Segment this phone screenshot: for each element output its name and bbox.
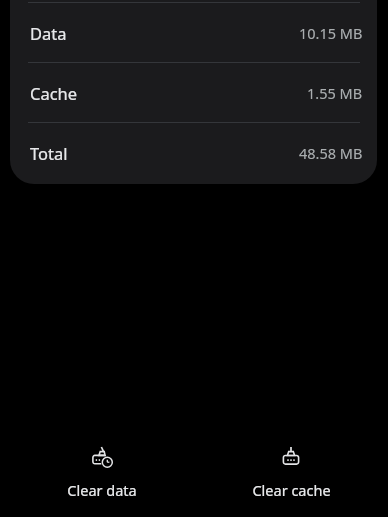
- staticText: 48.58 MB: [299, 143, 363, 163]
- staticText: Data: [30, 22, 67, 44]
- staticText: Clear data: [67, 480, 137, 500]
- staticText: 10.15 MB: [299, 23, 363, 43]
- staticText: Total: [30, 142, 68, 164]
- staticText: 1.55 MB: [307, 83, 363, 103]
- button[interactable]: Clear cache: [231, 441, 351, 504]
- button[interactable]: Total: [10, 123, 377, 182]
- button[interactable]: Cache: [10, 63, 377, 122]
- button[interactable]: Clear data: [42, 441, 162, 504]
- staticText: Clear cache: [252, 480, 331, 500]
- button[interactable]: Data: [10, 3, 377, 62]
- staticText: Cache: [30, 82, 78, 104]
